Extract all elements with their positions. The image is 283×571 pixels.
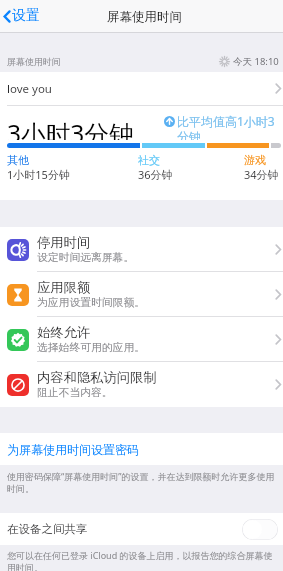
staticText: 为应用设置时间限额。 — [37, 296, 145, 310]
staticText: 屏幕使用时间 — [107, 9, 182, 25]
button[interactable]: 内容和隐私访问限制 — [0, 362, 283, 407]
staticText: 屏幕使用时间 — [7, 56, 61, 67]
button[interactable]: 在设备之间共享 — [0, 513, 283, 545]
button[interactable]: 始终允许 — [0, 317, 283, 362]
staticText: 设置 — [12, 7, 40, 25]
staticText: 社交 — [138, 153, 160, 167]
staticText: 其他 — [7, 153, 29, 167]
staticText: 游戏 — [244, 153, 266, 167]
staticText: 比平均值高1小时3分钟 — [177, 113, 282, 140]
button[interactable]: 应用限额 — [0, 272, 283, 317]
button[interactable]: 为屏幕使用时间设置密码 — [0, 433, 283, 465]
staticText: 您可以在任何已登录 iCloud 的设备上启用，以报告您的综合屏幕使用时间。 — [7, 549, 278, 571]
staticText: 3小时3分钟 — [7, 117, 134, 140]
staticText: 1小时15分钟 — [7, 167, 70, 180]
button[interactable]: 停用时间 — [0, 227, 283, 272]
staticText: 为屏幕使用时间设置密码 — [7, 442, 139, 457]
staticText: 内容和隐私访问限制 — [37, 369, 157, 386]
staticText: 设定时间远离屏幕。 — [37, 251, 135, 265]
staticText: 阻止不当内容。 — [37, 386, 113, 400]
staticText: love you — [7, 81, 52, 97]
staticText: 36分钟 — [138, 167, 173, 180]
button[interactable]: love you — [0, 72, 283, 105]
staticText: 始终允许 — [37, 324, 91, 341]
staticText: 应用限额 — [37, 279, 91, 296]
staticText: 使用密码保障“屏幕使用时间”的设置，并在达到限额时允许更多使用时间。 — [7, 470, 278, 495]
button[interactable]: Share across devices toggle — [242, 519, 278, 540]
staticText: 停用时间 — [37, 234, 91, 251]
staticText: 34分钟 — [244, 167, 279, 180]
button[interactable]: 设置 — [3, 7, 40, 25]
staticText: 今天 18:10 — [233, 55, 279, 68]
staticText: 在设备之间共享 — [7, 522, 88, 536]
staticText: 选择始终可用的应用。 — [37, 341, 145, 355]
